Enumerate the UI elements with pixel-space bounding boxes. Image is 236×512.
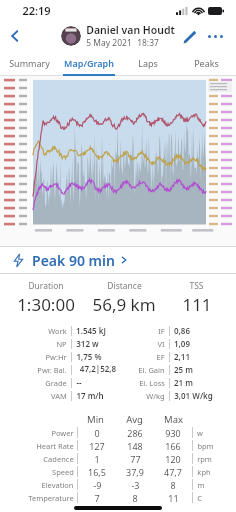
staticText: VAM [51,391,67,401]
button[interactable]: Daniel van Houdt [61,23,175,49]
staticText: Pw:Hr [45,352,67,362]
staticText: 2,11 [174,351,190,362]
button[interactable]: Edit [176,23,202,49]
staticText: 37,9 [126,466,144,478]
staticText: 47,2|52,8 % [76,363,120,376]
staticText: Peaks [194,57,219,69]
staticText: 111 [182,293,212,316]
staticText: 930 [165,427,181,439]
staticText: 312 w [76,338,99,349]
staticText: Map/Graph [64,57,114,69]
staticText: 25 m [174,364,193,375]
staticText: Speed [52,467,74,477]
button[interactable]: Summary [0,52,59,74]
staticText: W/kg [146,391,165,401]
staticText: 17 m/h [76,390,104,401]
button[interactable]: Back [0,20,30,52]
staticText: 11 [168,492,179,504]
staticText: Work [48,326,67,336]
staticText: bpm [197,441,214,451]
staticText: 16,5 [88,466,106,478]
staticText: 5 May 2021 [86,37,132,49]
staticText: C [197,493,202,503]
staticText: 1.545 kJ [76,325,106,336]
staticText: 8 [170,479,176,491]
button[interactable]: Laps [118,52,177,74]
staticText: 47,7 [164,466,182,478]
staticText: Peak 90 min [32,251,115,270]
staticText: El. Gain [138,365,165,375]
staticText: 1,09 [174,338,190,349]
staticText: Distance [107,280,142,292]
button[interactable]: Map/Graph [59,52,118,74]
staticText: 8 [132,492,138,504]
staticText: 120 [165,453,181,465]
staticText: 1,75 % [76,351,102,362]
staticText: Elevation [41,480,74,490]
staticText: Temperature [28,493,74,503]
staticText: Duration [28,280,64,292]
staticText: VI [157,339,165,349]
staticText: 77 [130,453,141,465]
staticText: 0 [94,427,100,439]
staticText: 7 [94,492,100,504]
staticText: Summary [9,57,50,69]
staticText: Cadence [43,454,74,464]
staticText: 18:37 [137,37,159,49]
staticText: 1:30:00 [17,293,75,316]
staticText: 127 [89,440,105,452]
staticText: Heart Rate [36,441,74,451]
button[interactable]: Peaks [177,52,236,74]
staticText: Max [164,413,183,426]
staticText: Avg [126,413,143,426]
staticText: m [197,480,205,490]
staticText: Grade [45,378,67,388]
staticText: Power [51,428,74,438]
button[interactable]: More options [202,23,228,49]
staticText: TSS [189,280,204,292]
staticText: kph [197,467,211,477]
staticText: El. Loss [139,378,165,388]
staticText: 22:19 [22,3,51,18]
staticText: w [197,428,203,438]
staticText: Daniel van Houdt [86,23,175,37]
staticText: Min [87,413,104,426]
staticText: 3,01 W/kg [174,390,213,401]
staticText: 166 [165,440,181,452]
staticText: IF [158,326,165,336]
staticText: NP [56,339,67,349]
staticText: -9 [93,479,102,491]
staticText: 1 [94,453,100,465]
staticText: 0,86 [174,325,190,336]
staticText: -3 [131,479,140,491]
staticText: 286 [127,427,143,439]
staticText: rpm [197,454,212,464]
staticText: 148 [127,440,143,452]
staticText: EF [156,352,165,362]
staticText: 56,9 km [92,293,156,316]
staticText: Laps [138,57,158,69]
staticText: 21 m [174,377,193,388]
button[interactable]: Peak 90 min [0,247,236,273]
staticText: Pwr. Bal. [37,365,67,375]
staticText: -- [76,377,82,388]
